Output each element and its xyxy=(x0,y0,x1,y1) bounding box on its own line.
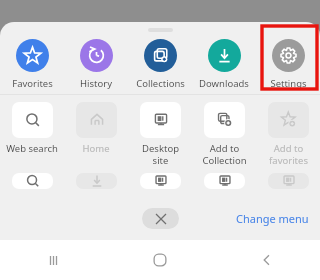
staticText: Settings xyxy=(270,77,307,90)
staticText: Downloads xyxy=(199,77,249,90)
staticText: Add to Collection xyxy=(202,142,247,166)
button[interactable] xyxy=(64,173,128,189)
staticText: Collections xyxy=(136,77,185,90)
button[interactable]: Favorites xyxy=(0,35,64,94)
button[interactable]: Back xyxy=(213,240,320,280)
button[interactable]: Add to Collection xyxy=(192,102,256,170)
button[interactable]: Close menu xyxy=(142,208,179,229)
button[interactable] xyxy=(256,173,320,189)
button[interactable]: Recent apps xyxy=(0,240,106,280)
button[interactable] xyxy=(128,173,192,189)
button[interactable]: Home xyxy=(64,102,128,170)
staticText: Add to favorites xyxy=(269,142,308,166)
staticText: Desktop site xyxy=(142,142,179,166)
button[interactable]: History xyxy=(64,35,128,94)
staticText: Change menu xyxy=(236,211,309,226)
button[interactable]: Change menu xyxy=(231,206,314,231)
staticText: Home xyxy=(82,142,110,155)
staticText: Favorites xyxy=(12,77,53,90)
button[interactable]: Collections xyxy=(128,35,192,94)
staticText: Web search xyxy=(6,142,58,155)
button[interactable]: Home xyxy=(106,240,213,280)
button[interactable] xyxy=(0,173,64,189)
button[interactable]: Desktop site xyxy=(128,102,192,170)
button[interactable]: Web search xyxy=(0,102,64,170)
button[interactable]: Add to favorites xyxy=(256,102,320,170)
button[interactable]: Downloads xyxy=(192,35,256,94)
button[interactable]: Settings xyxy=(256,35,320,94)
staticText: History xyxy=(80,77,112,90)
button[interactable] xyxy=(192,173,256,189)
